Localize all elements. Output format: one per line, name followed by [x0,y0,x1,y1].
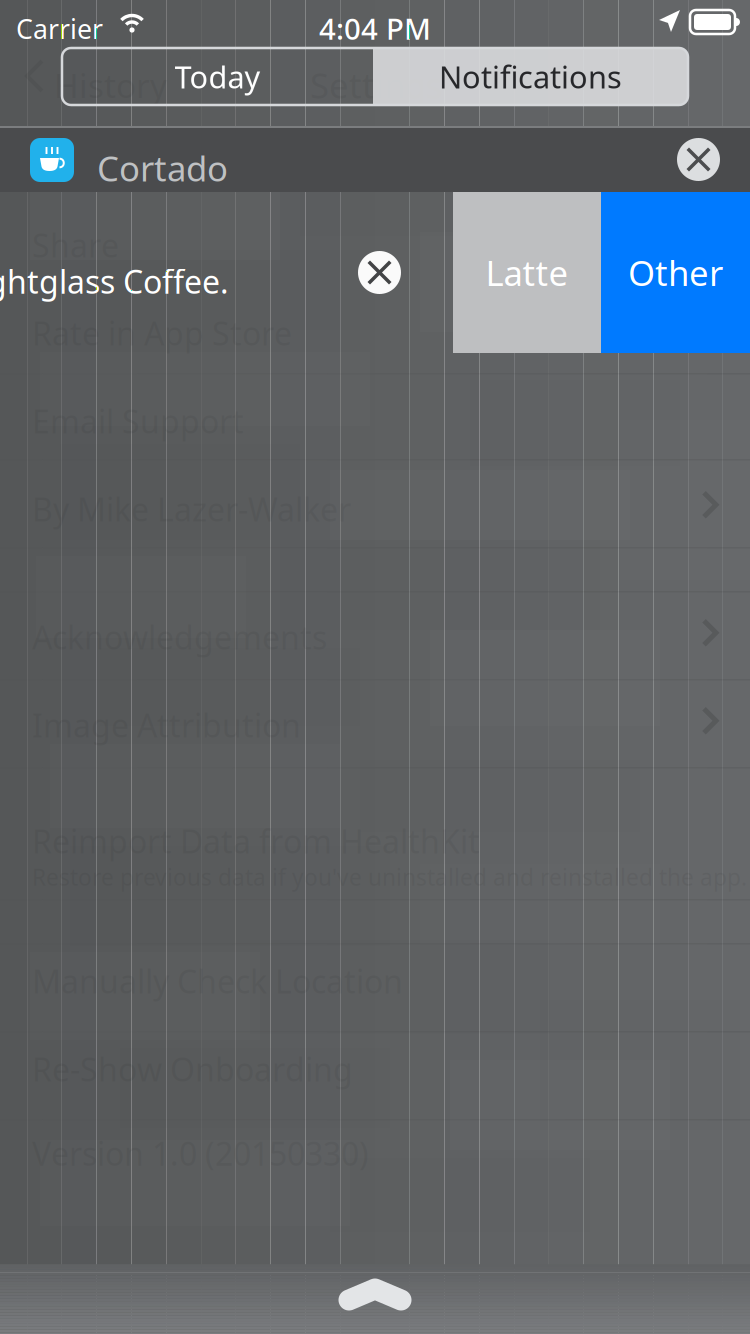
button[interactable]: Clear notification [358,251,401,294]
staticText: ghtglass Coffee. [0,260,229,302]
staticText: By Mike Lazer-Walker [32,488,351,530]
staticText: Cortado [97,145,228,191]
button[interactable]: Latte [453,192,601,353]
button[interactable]: Other [601,192,750,353]
staticText: Today [174,56,260,97]
button[interactable]: Today [62,48,373,105]
staticText: Other [628,249,723,295]
staticText: Latte [485,249,568,295]
staticText: History [54,63,167,107]
button[interactable]: Clear Cortado notifications [677,138,720,181]
button[interactable]: Notifications [373,48,688,105]
staticText: 4:04 PM [319,9,431,48]
staticText: Carrier [16,11,103,46]
staticText: Notifications [439,56,622,97]
staticText: Restore previous data if you've uninstal… [32,862,747,892]
staticText: Settings [310,62,443,108]
staticText: Reimport Data from HealthKit [32,820,480,862]
